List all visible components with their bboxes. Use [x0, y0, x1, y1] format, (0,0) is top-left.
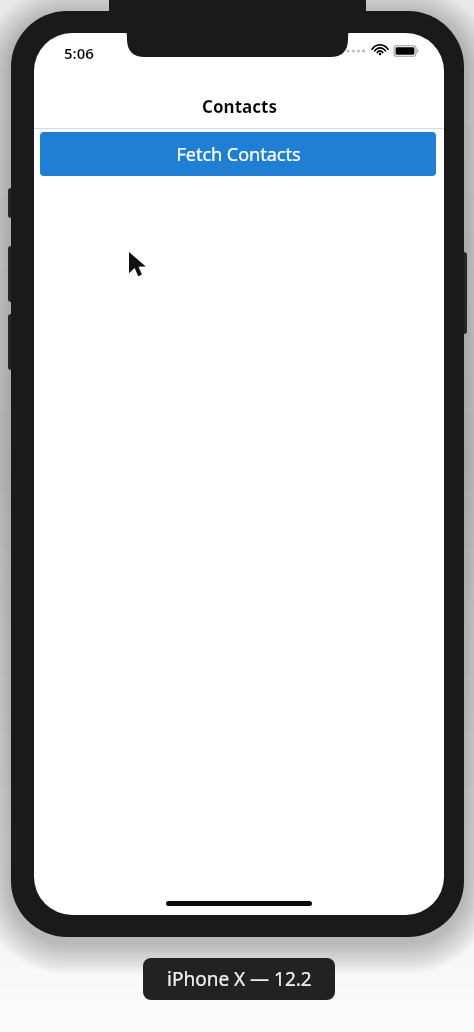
staticText: Fetch Contacts [176, 142, 301, 167]
staticText: Contacts [202, 95, 277, 118]
staticText: 5:06 [64, 43, 94, 63]
button[interactable]: Fetch Contacts [40, 132, 436, 176]
staticText: iPhone X — 12.2 [167, 966, 312, 992]
